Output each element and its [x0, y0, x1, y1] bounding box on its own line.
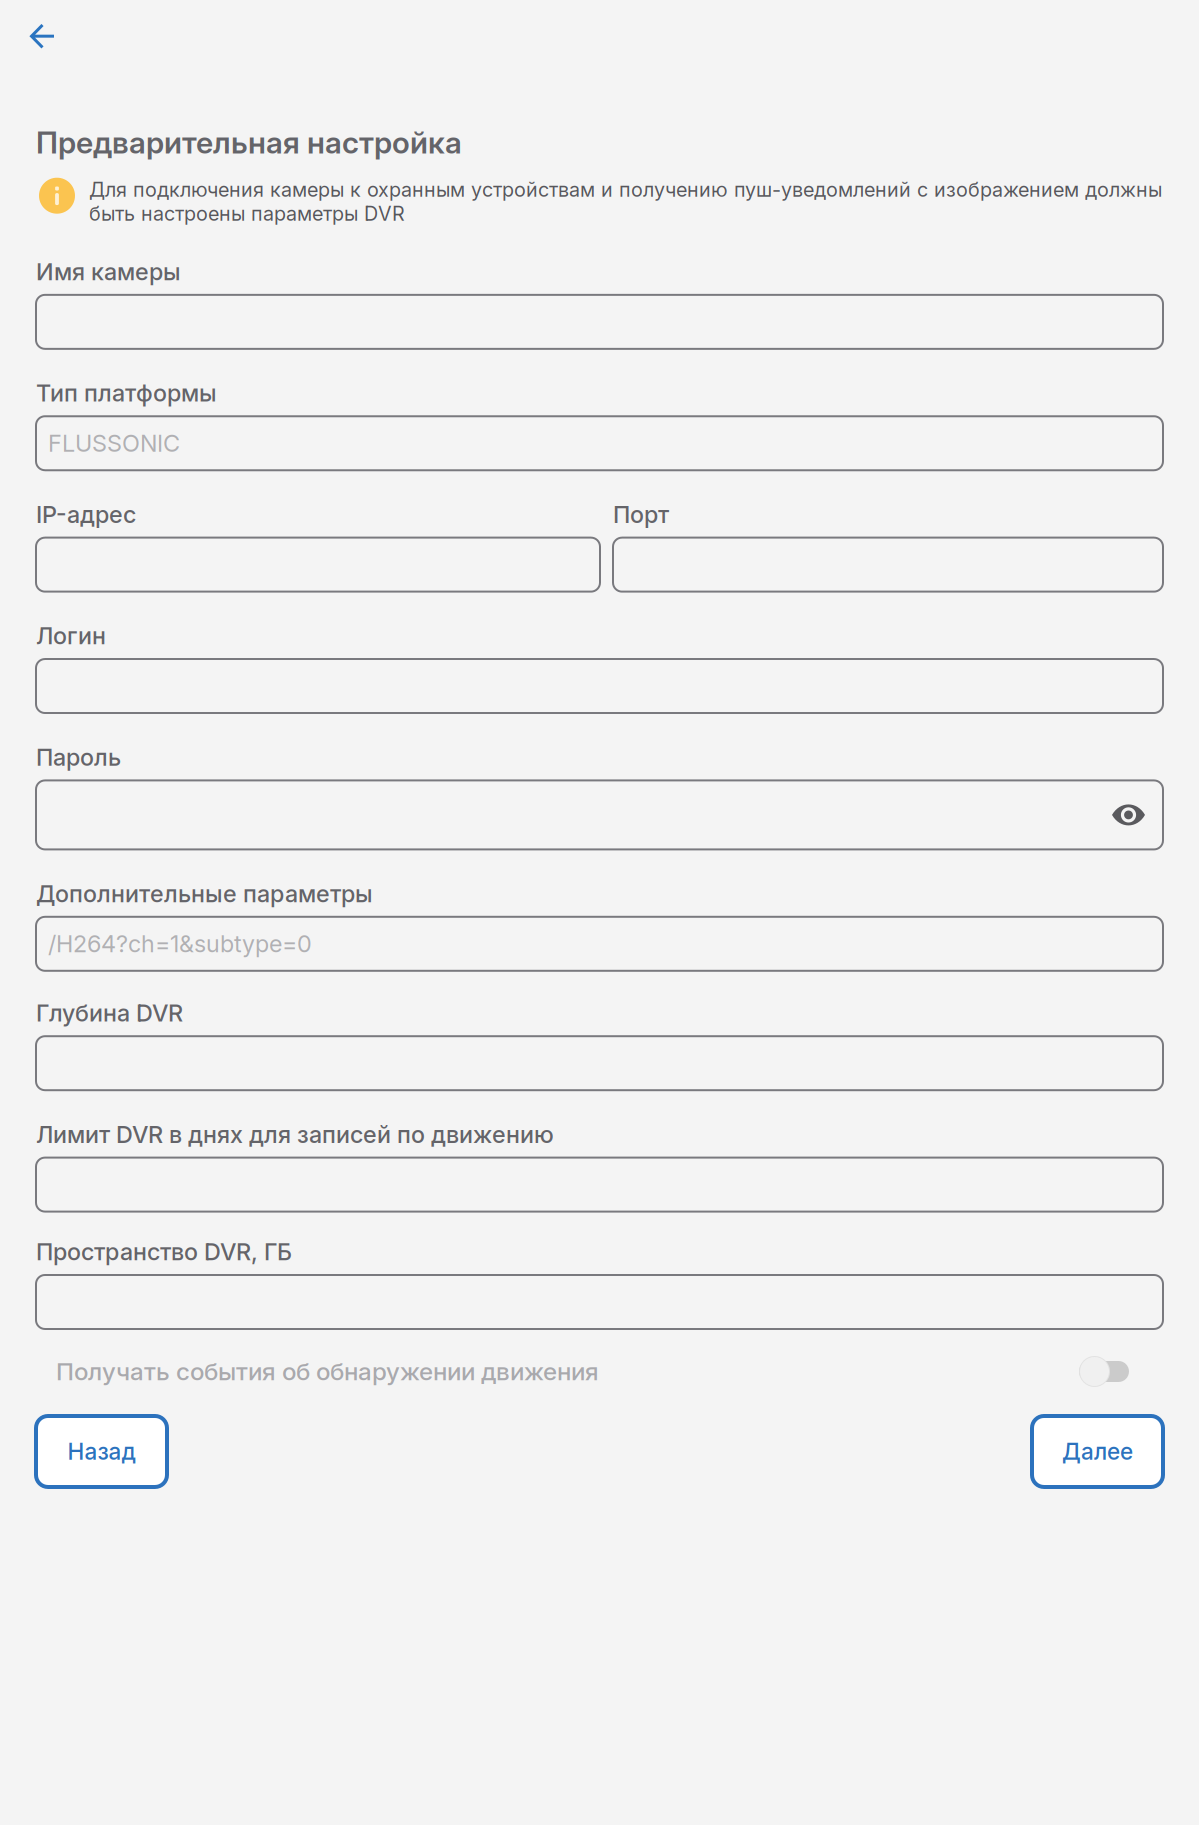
staticText: Для подключения камеры к охранным устрой…	[89, 178, 1162, 225]
staticText: Логин	[36, 622, 106, 650]
staticText: IP-адрес	[36, 500, 136, 529]
button[interactable]: Назад	[0, 0, 73, 65]
button[interactable]: Далее	[1032, 1416, 1163, 1487]
staticText: FLUSSONIC	[48, 429, 180, 457]
staticText: Порт	[613, 500, 669, 529]
staticText: Далее	[1062, 1438, 1133, 1465]
staticText: Лимит DVR в днях для записей по движению	[36, 1120, 554, 1149]
button[interactable]: Назад	[36, 1416, 167, 1487]
staticText: Пространство DVR, ГБ	[36, 1238, 292, 1266]
staticText: Глубина DVR	[36, 999, 183, 1027]
button[interactable]: Показать пароль	[1112, 803, 1163, 826]
button[interactable]: Получать события об обнаружении движения	[0, 1329, 1199, 1416]
staticText: Назад	[67, 1438, 135, 1465]
staticText: /H264?ch=1&subtype=0	[48, 930, 312, 958]
staticText: Пароль	[36, 743, 121, 771]
staticText: Получать события об обнаружении движения	[56, 1357, 599, 1386]
staticText: Предварительная настройка	[36, 124, 462, 161]
staticText: Дополнительные параметры	[36, 879, 373, 908]
staticText: Имя камеры	[36, 257, 181, 286]
staticText: Тип платформы	[36, 379, 217, 407]
